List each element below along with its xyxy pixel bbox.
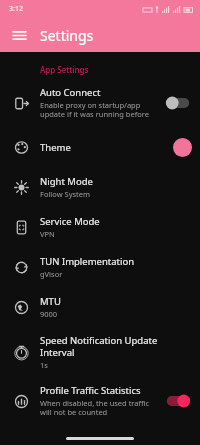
staticText: VPN: [40, 229, 55, 239]
staticText: Settings: [40, 26, 94, 45]
staticText: Night Mode: [40, 175, 93, 188]
button[interactable]: Profile Traffic Statistics: [0, 377, 200, 425]
staticText: 1s: [40, 360, 48, 370]
button[interactable]: Speed Notification Update Interval: [0, 327, 200, 377]
staticText: Auto Connect: [40, 86, 101, 99]
staticText: App Settings: [40, 64, 89, 75]
staticText: Profile Traffic Statistics: [40, 384, 141, 397]
staticText: MTU: [40, 295, 61, 308]
button[interactable]: Night Mode: [0, 167, 200, 207]
button[interactable]: Open navigation menu: [6, 22, 32, 48]
staticText: TUN Implementation: [40, 255, 135, 268]
staticText: 9000: [40, 309, 58, 319]
button[interactable]: Theme: [0, 127, 200, 167]
button[interactable]: Service Mode: [0, 207, 200, 247]
staticText: gVisor: [40, 269, 63, 279]
staticText: Speed Notification Update Interval: [40, 334, 192, 359]
staticText: Service Mode: [40, 215, 100, 228]
staticText: 3:12: [9, 4, 23, 14]
staticText: Enable proxy on startup/app update if it…: [40, 100, 149, 120]
button[interactable]: TUN Implementation: [0, 247, 200, 287]
staticText: Follow System: [40, 189, 91, 199]
staticText: Theme: [40, 141, 71, 154]
button[interactable]: MTU: [0, 287, 200, 327]
button[interactable]: Toggle on: [164, 393, 192, 409]
button[interactable]: Auto Connect: [0, 79, 200, 127]
staticText: When disabled, the used traffic will not…: [40, 398, 150, 418]
button[interactable]: Toggle off: [164, 95, 192, 111]
